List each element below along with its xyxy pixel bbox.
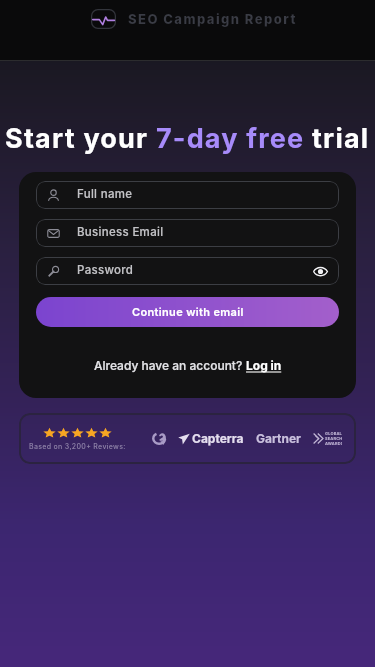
staticText: GLOBAL	[325, 431, 342, 436]
staticText: Start your 7-day free trial	[5, 122, 370, 155]
staticText: AWARDS	[325, 441, 342, 446]
staticText: Gartner	[256, 431, 301, 446]
staticText: Full name	[77, 187, 133, 201]
button[interactable]: Password	[36, 257, 339, 285]
staticText: Password	[77, 263, 134, 277]
staticText: SEO Campaign Report	[128, 11, 297, 27]
button[interactable]: Show password	[311, 263, 330, 280]
staticText: Continue with email	[132, 305, 244, 318]
staticText: Already have an account?	[94, 358, 246, 373]
staticText: Log in	[246, 358, 282, 373]
button[interactable]: Log in	[246, 358, 282, 373]
staticText: Business Email	[77, 225, 164, 239]
button[interactable]: Continue with email	[36, 297, 339, 327]
button[interactable]: SEO Campaign Report	[91, 9, 297, 29]
staticText: SEARCH	[325, 436, 342, 441]
button[interactable]: Full name	[36, 181, 339, 209]
button[interactable]: Business Email	[36, 219, 339, 247]
staticText: Capterra	[192, 431, 244, 446]
staticText: Based on 3,200+ Reviews:	[29, 442, 126, 450]
